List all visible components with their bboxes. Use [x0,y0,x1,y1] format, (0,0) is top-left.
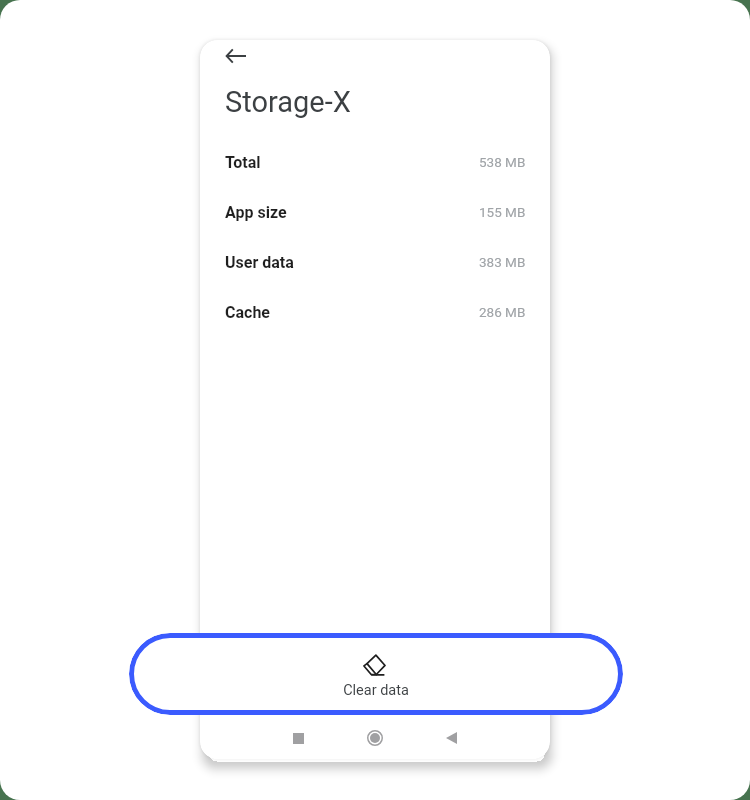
staticText: Cache [225,303,271,322]
staticText: 286 MB [479,304,526,320]
button[interactable]: Clear data [129,633,623,715]
button[interactable]: App size [200,187,550,237]
button[interactable]: Back [429,716,473,759]
button[interactable]: Total [200,137,550,187]
button[interactable]: Cache [200,287,550,337]
staticText: 538 MB [479,154,526,170]
staticText: Clear data [343,682,409,699]
staticText: 383 MB [479,254,526,270]
staticText: App size [225,203,287,222]
button[interactable]: User data [200,237,550,287]
staticText: User data [225,253,294,272]
staticText: Total [225,153,261,172]
button[interactable]: Recent apps [276,716,320,759]
staticText: Storage-X [225,85,351,119]
button[interactable]: Home [353,716,397,759]
button[interactable]: Back [218,40,254,74]
staticText: 155 MB [479,204,526,220]
